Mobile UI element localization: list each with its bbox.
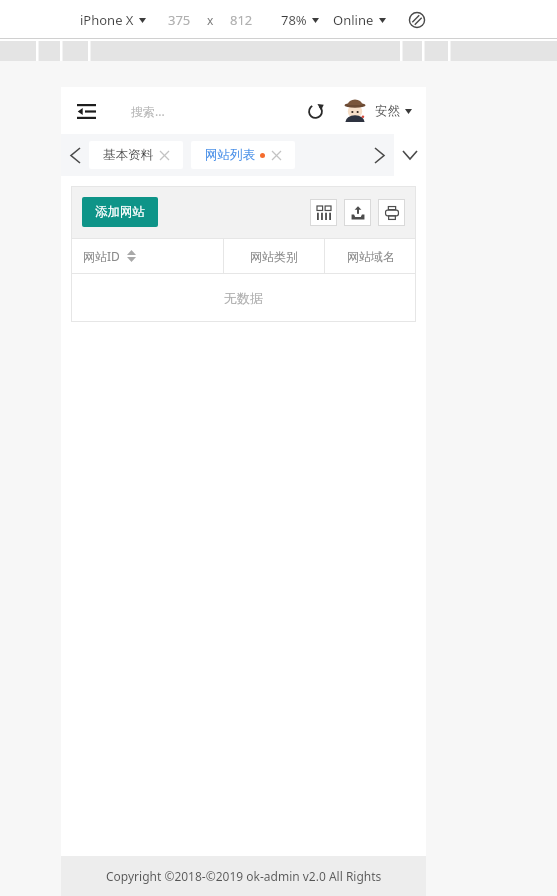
staticText: 基本资料 [103, 147, 153, 163]
button[interactable]: 添加网站 [82, 197, 158, 227]
button[interactable]: Refresh [299, 95, 331, 127]
staticText: 网站域名 [347, 249, 395, 264]
staticText: Copyright ©2018-©2019 ok-admin v2.0 All … [106, 868, 382, 884]
staticText: 812 [230, 11, 253, 29]
staticText: 安然 [375, 103, 400, 119]
staticText: 78% [281, 11, 307, 29]
button[interactable]: 网站类别 [224, 239, 324, 273]
button[interactable]: 网站ID [71, 239, 223, 273]
staticText: 网站ID [83, 248, 120, 264]
button[interactable]: Rotate [404, 7, 430, 33]
button[interactable]: Column filter [310, 199, 337, 226]
staticText: 网站列表 [205, 147, 255, 163]
button[interactable]: Toggle menu [69, 94, 103, 128]
button[interactable]: 搜索... [131, 103, 165, 119]
staticText: Online [333, 11, 374, 29]
staticText: 375 [168, 11, 191, 29]
button[interactable]: 78% [281, 11, 319, 29]
staticText: x [207, 12, 214, 28]
button[interactable]: Export [344, 199, 371, 226]
button[interactable]: Previous tabs [61, 134, 89, 176]
button[interactable]: Next tabs [364, 134, 394, 176]
button[interactable]: 网站域名 [325, 239, 416, 273]
staticText: iPhone X [80, 11, 134, 29]
button[interactable]: 基本资料 [89, 141, 183, 169]
button[interactable]: 安然 [343, 99, 412, 123]
button[interactable]: Online [333, 11, 386, 29]
button[interactable]: iPhone X [80, 11, 146, 29]
staticText: 网站类别 [250, 249, 298, 264]
button[interactable]: Tab options [394, 134, 426, 176]
staticText: 添加网站 [95, 204, 145, 220]
button[interactable]: 网站列表 [191, 141, 295, 169]
staticText: 无数据 [224, 290, 263, 306]
button[interactable]: Print [378, 199, 405, 226]
